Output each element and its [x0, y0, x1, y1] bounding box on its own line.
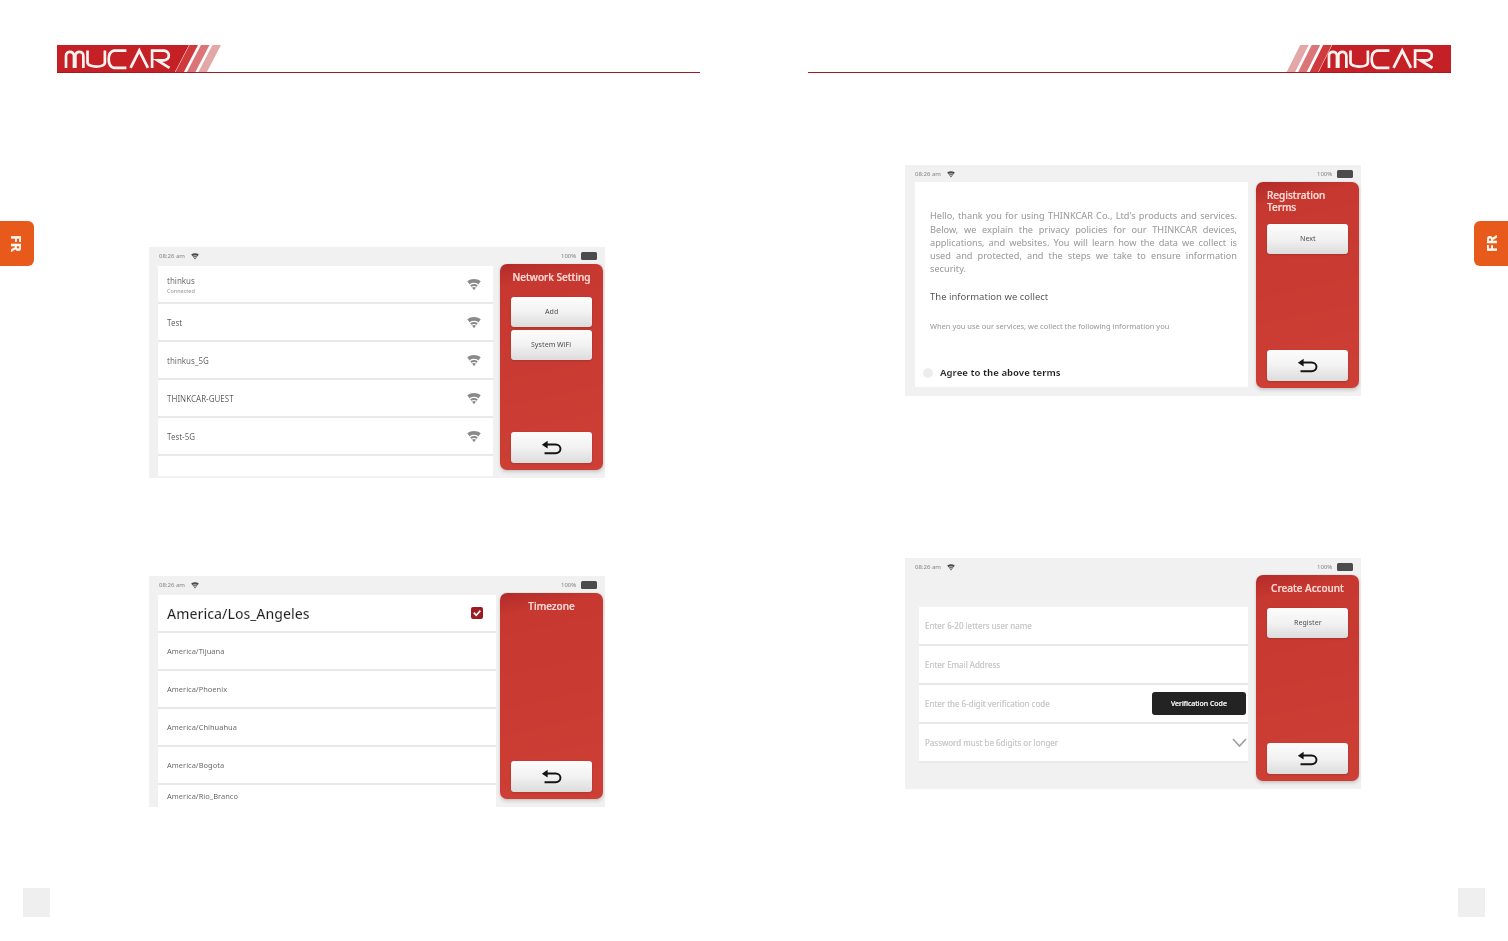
staticText: Enter 6-20 letters user name: [925, 620, 1246, 631]
button[interactable]: Next: [1267, 224, 1348, 254]
button[interactable]: thinkus: [167, 266, 481, 302]
staticText: 08:26 am: [915, 563, 941, 571]
button[interactable]: Register: [1267, 608, 1348, 638]
button[interactable]: Back: [511, 761, 592, 792]
staticText: Next: [1300, 234, 1316, 244]
staticText: 08:26 am: [159, 252, 185, 260]
staticText: Enter Email Address: [925, 659, 1246, 670]
button[interactable]: Back: [1267, 350, 1348, 381]
staticText: Test: [167, 317, 183, 328]
staticText: Create Account: [1267, 581, 1348, 595]
staticText: Timezone: [511, 599, 592, 613]
staticText: FR: [7, 235, 26, 252]
button[interactable]: System WiFi: [511, 330, 592, 360]
staticText: System WiFi: [531, 340, 572, 350]
button[interactable]: America/Los_Angeles: [167, 595, 483, 631]
staticText: thinkus_5G: [167, 355, 209, 366]
button[interactable]: Selected timezone: [471, 607, 483, 619]
staticText: Connected: [167, 287, 195, 294]
staticText: 08:26 am: [159, 581, 185, 589]
button[interactable]: Test-5G: [167, 418, 481, 454]
button[interactable]: Verification Code: [1152, 692, 1246, 715]
staticText: THINKCAR-GUEST: [167, 393, 234, 404]
staticText: America/Chihuahua: [167, 722, 237, 732]
staticText: 100%: [561, 581, 577, 589]
button[interactable]: Back: [511, 432, 592, 463]
staticText: When you use our services, we collect th…: [930, 321, 1170, 331]
button[interactable]: Add: [511, 297, 592, 327]
staticText: Add: [545, 307, 559, 317]
staticText: America/Rio_Branco: [167, 791, 238, 801]
staticText: Hello, thank you for using THINKCAR Co.,…: [930, 209, 1237, 274]
button[interactable]: Enter 6-20 letters user name: [925, 607, 1246, 644]
staticText: Registration Terms: [1267, 188, 1348, 214]
staticText: America/Phoenix: [167, 684, 228, 694]
staticText: Network Setting: [511, 270, 592, 284]
staticText: America/Bogota: [167, 760, 225, 770]
button[interactable]: THINKCAR-GUEST: [167, 380, 481, 416]
button[interactable]: FR: [1474, 221, 1508, 266]
button[interactable]: Password must be 6digits or longer: [925, 724, 1246, 761]
button[interactable]: Agree to the above terms: [923, 366, 1061, 379]
staticText: 100%: [561, 252, 577, 260]
button[interactable]: FR: [0, 221, 34, 266]
staticText: Test-5G: [167, 431, 196, 442]
staticText: 08:26 am: [915, 170, 941, 178]
staticText: America/Los_Angeles: [167, 604, 471, 623]
staticText: Enter the 6-digit verification code: [925, 698, 1152, 709]
staticText: 100%: [1317, 563, 1333, 571]
staticText: Register: [1294, 618, 1322, 628]
staticText: thinkus: [167, 275, 195, 286]
button[interactable]: America/Phoenix: [167, 671, 484, 707]
staticText: 100%: [1317, 170, 1333, 178]
staticText: America/Tijuana: [167, 646, 225, 656]
button[interactable]: Back: [1267, 743, 1348, 774]
staticText: Verification Code: [1171, 699, 1227, 709]
button[interactable]: Enter the 6-digit verification code: [925, 685, 1246, 722]
button[interactable]: Test: [167, 304, 481, 340]
button[interactable]: America/Tijuana: [167, 633, 484, 669]
button[interactable]: thinkus_5G: [167, 342, 481, 378]
staticText: The information we collect: [930, 290, 1049, 303]
button[interactable]: America/Rio_Branco: [167, 785, 484, 807]
button[interactable]: America/Bogota: [167, 747, 484, 783]
button[interactable]: Enter Email Address: [925, 646, 1246, 683]
button[interactable]: America/Chihuahua: [167, 709, 484, 745]
staticText: FR: [1482, 235, 1501, 252]
staticText: Password must be 6digits or longer: [925, 737, 1233, 748]
staticText: Agree to the above terms: [940, 366, 1061, 379]
